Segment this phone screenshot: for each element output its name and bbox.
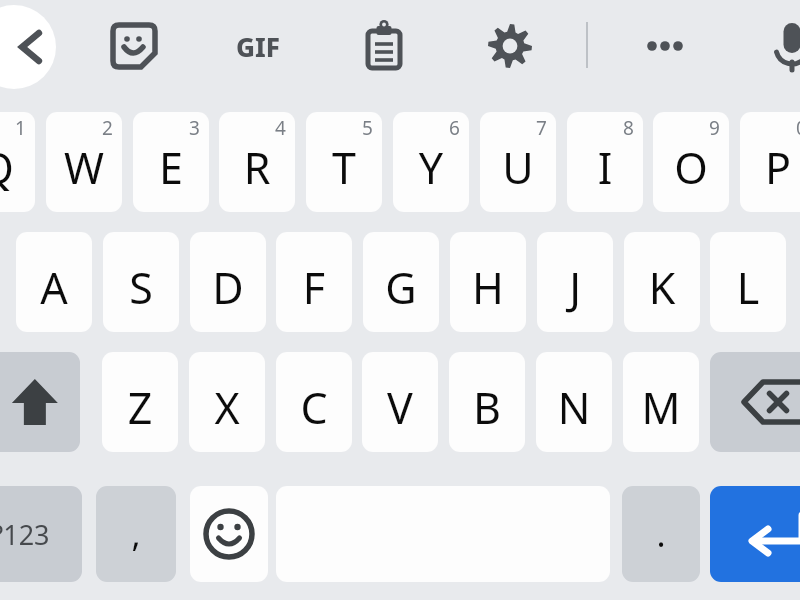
button[interactable]: I [567, 112, 643, 212]
staticText: GIF [236, 29, 280, 64]
staticText: 5 [362, 115, 373, 141]
button[interactable]: W [46, 112, 122, 212]
button[interactable]: Stickers [94, 6, 174, 86]
staticText: K [624, 258, 700, 332]
button[interactable]: Y [393, 112, 469, 212]
staticText: Q [0, 138, 35, 212]
staticText: I [567, 138, 643, 212]
staticText: 3 [189, 115, 200, 141]
button[interactable]: F [276, 232, 352, 332]
button[interactable]: T [306, 112, 382, 212]
staticText: H [450, 258, 526, 332]
button[interactable]: C [276, 352, 352, 452]
staticText: N [536, 378, 612, 452]
button[interactable]: L [710, 232, 786, 332]
button[interactable]: Shift [0, 352, 80, 452]
button[interactable]: Emoji [190, 486, 268, 582]
button[interactable]: Back [0, 5, 56, 89]
staticText: L [710, 258, 786, 332]
staticText: U [480, 138, 556, 212]
staticText: B [449, 378, 525, 452]
staticText: P [740, 138, 800, 212]
staticText: ?123 [0, 516, 50, 553]
button[interactable]: Enter [710, 486, 800, 582]
staticText: E [133, 138, 209, 212]
staticText: O [653, 138, 729, 212]
staticText: Y [393, 138, 469, 212]
button[interactable]: B [449, 352, 525, 452]
button[interactable]: Z [102, 352, 178, 452]
staticText: F [276, 258, 352, 332]
staticText: R [219, 138, 295, 212]
staticText: 0 [796, 115, 800, 141]
staticText: 4 [275, 115, 286, 141]
staticText: T [306, 138, 382, 212]
button[interactable]: ?123 [0, 486, 82, 582]
button[interactable]: Clipboard [344, 6, 424, 86]
button[interactable]: X [189, 352, 265, 452]
staticText: 9 [709, 115, 720, 141]
button[interactable]: GIF [218, 6, 298, 86]
button[interactable]: Settings [470, 6, 550, 86]
button[interactable]: D [190, 232, 266, 332]
button[interactable]: U [480, 112, 556, 212]
button[interactable]: R [219, 112, 295, 212]
staticText: V [362, 378, 438, 452]
button[interactable]: Backspace [710, 352, 800, 452]
button[interactable]: Voice input [752, 6, 800, 86]
staticText: D [190, 258, 266, 332]
staticText: S [103, 258, 179, 332]
staticText: 1 [15, 115, 26, 141]
button[interactable]: E [133, 112, 209, 212]
staticText: G [363, 258, 439, 332]
button[interactable]: Q [0, 112, 35, 212]
button[interactable]: S [103, 232, 179, 332]
button[interactable]: More options [625, 6, 705, 86]
staticText: , [131, 511, 141, 557]
staticText: W [46, 138, 122, 212]
staticText: 6 [449, 115, 460, 141]
button[interactable]: J [537, 232, 613, 332]
staticText: C [276, 378, 352, 452]
staticText: 7 [536, 115, 547, 141]
staticText: X [189, 378, 265, 452]
staticText: 2 [102, 115, 113, 141]
button[interactable]: , [96, 486, 176, 582]
staticText: 8 [623, 115, 634, 141]
button[interactable]: A [16, 232, 92, 332]
staticText: A [16, 258, 92, 332]
button[interactable]: K [624, 232, 700, 332]
staticText: M [623, 378, 699, 452]
button[interactable]: G [363, 232, 439, 332]
button[interactable]: M [623, 352, 699, 452]
staticText: J [537, 258, 613, 332]
staticText: . [656, 511, 666, 557]
button[interactable]: P [740, 112, 800, 212]
button[interactable]: O [653, 112, 729, 212]
button[interactable]: V [362, 352, 438, 452]
button[interactable]: . [622, 486, 700, 582]
button[interactable]: N [536, 352, 612, 452]
button[interactable]: H [450, 232, 526, 332]
staticText: Z [102, 378, 178, 452]
